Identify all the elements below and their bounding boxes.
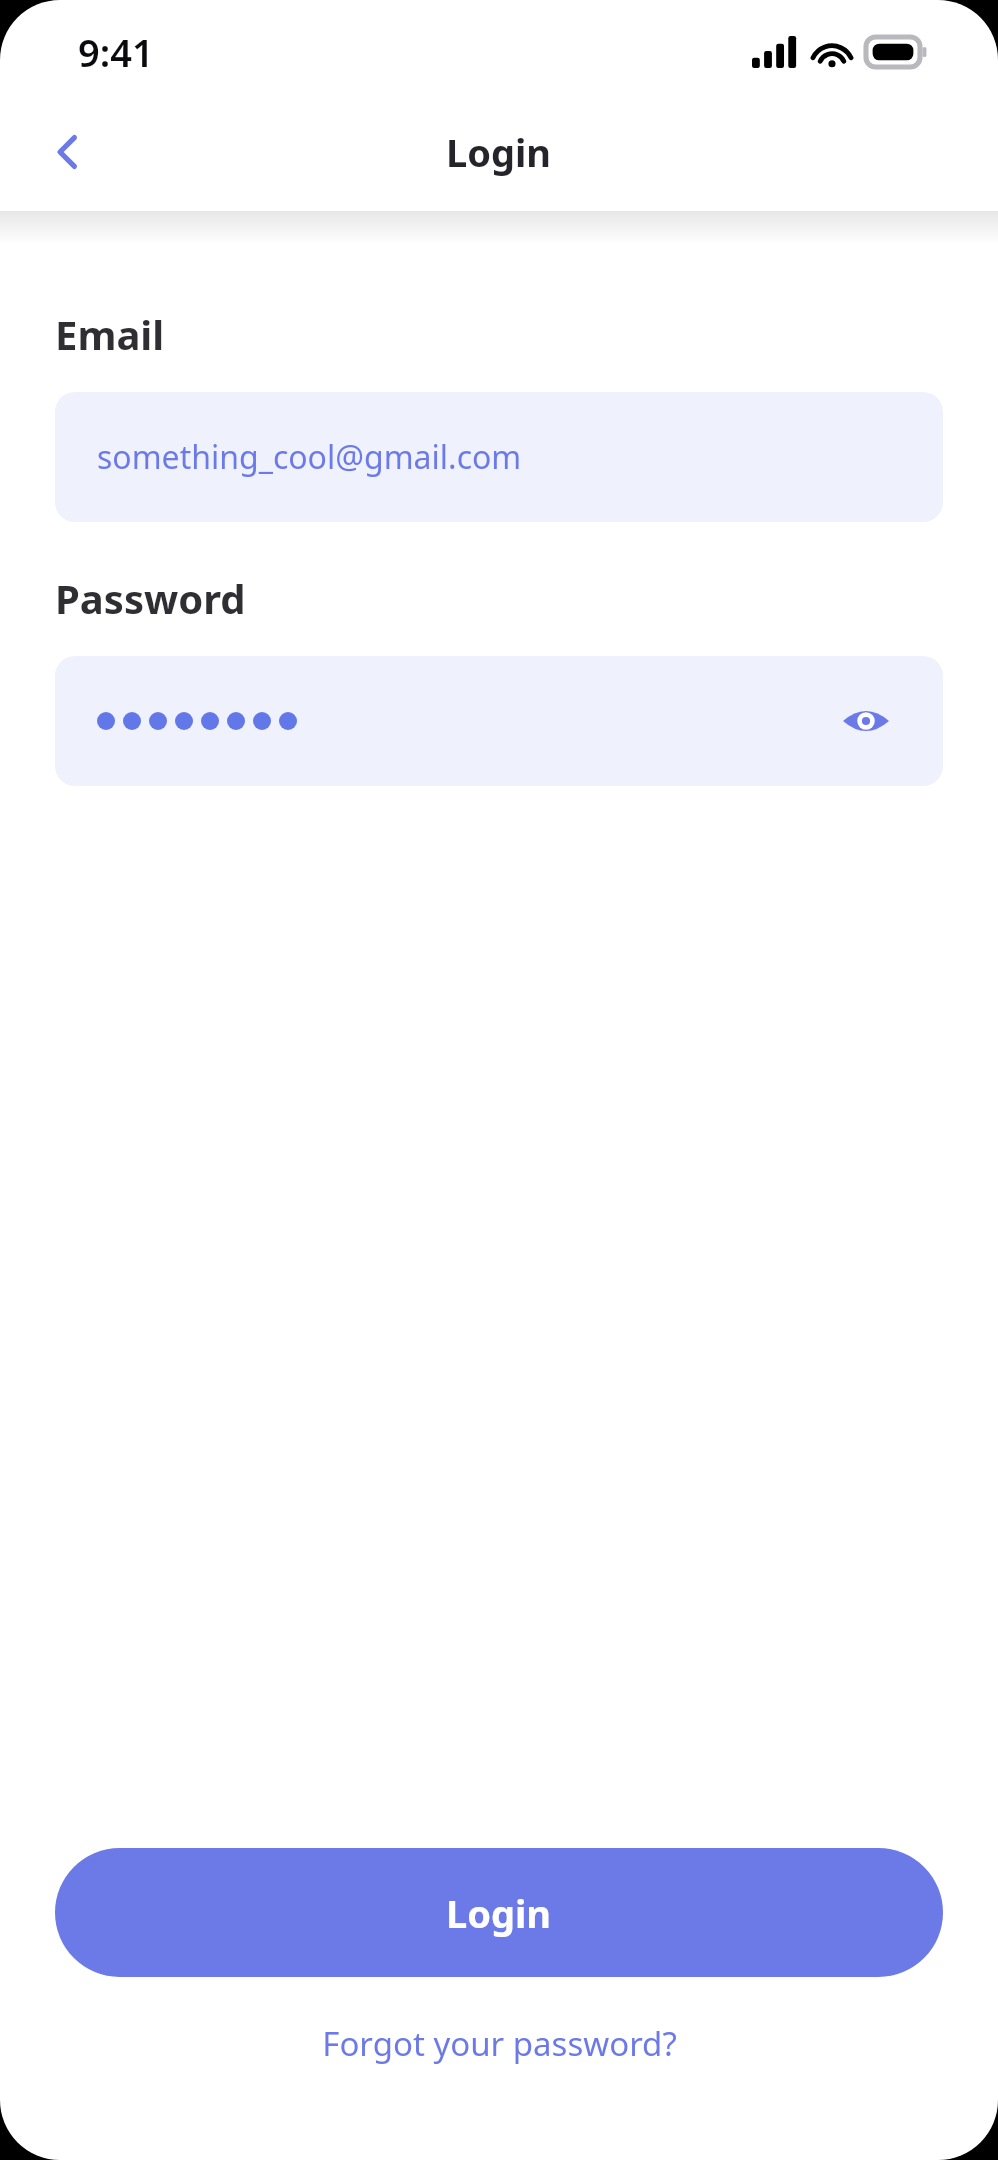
staticText: something_cool@gmail.com <box>97 435 522 479</box>
button[interactable]: Show password <box>835 690 897 752</box>
button[interactable]: Show password <box>55 656 943 786</box>
staticText: Login <box>446 1887 552 1939</box>
staticText: 9:41 <box>78 26 154 78</box>
button[interactable]: something_cool@gmail.com <box>55 392 943 522</box>
button[interactable]: Forgot your password? <box>302 2013 697 2074</box>
button[interactable]: Back <box>34 118 102 186</box>
staticText: Login <box>446 126 552 178</box>
staticText: Forgot your password? <box>322 2021 677 2066</box>
button[interactable]: Login <box>55 1848 943 1977</box>
staticText: Email <box>55 307 165 361</box>
staticText: Password <box>55 571 246 625</box>
